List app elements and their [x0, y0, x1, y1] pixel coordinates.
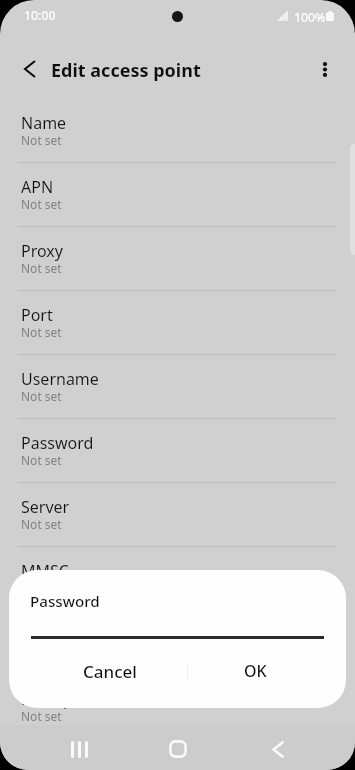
staticText: Not set	[21, 452, 62, 468]
staticText: Not set	[21, 516, 62, 532]
staticText: Username	[21, 368, 99, 390]
button[interactable]: Username	[0, 354, 355, 418]
staticText: Password	[21, 432, 94, 454]
staticText: MMSC	[21, 560, 69, 582]
button[interactable]: Proxy	[0, 226, 355, 290]
button[interactable]: OK	[183, 649, 328, 693]
staticText: Not set	[21, 132, 62, 148]
staticText: Not set	[21, 260, 62, 276]
staticText: APN	[21, 176, 54, 198]
button[interactable]: MMSC	[0, 546, 355, 610]
button[interactable]: Home	[156, 727, 200, 770]
button[interactable]: Cancel	[25, 649, 195, 693]
button[interactable]: Port	[0, 290, 355, 354]
button[interactable]: MMS proxy	[0, 610, 355, 674]
staticText: Not set	[21, 196, 62, 212]
staticText: MCC	[21, 752, 56, 770]
button[interactable]: Recent apps	[57, 727, 101, 770]
button[interactable]: APN	[0, 162, 355, 226]
button[interactable]: Name	[0, 98, 355, 162]
button[interactable]: MCC	[0, 738, 355, 770]
button[interactable]: Navigate up	[14, 53, 46, 85]
button[interactable]: MMS port	[0, 674, 355, 738]
staticText: Name	[21, 112, 67, 134]
staticText: Port	[21, 304, 53, 326]
button[interactable]: More options	[309, 53, 341, 85]
staticText: Password	[30, 591, 100, 612]
staticText: OK	[244, 660, 267, 682]
staticText: MMS port	[21, 688, 95, 710]
staticText: Edit access point	[51, 58, 201, 83]
staticText: Server	[21, 496, 70, 518]
staticText: Not set	[21, 708, 62, 724]
staticText: Proxy	[21, 240, 63, 262]
button[interactable]: Password	[0, 418, 355, 482]
button[interactable]: Back	[256, 727, 300, 770]
staticText: 100%	[294, 9, 326, 26]
staticText: MMS proxy	[21, 624, 106, 646]
staticText: Cancel	[83, 660, 137, 683]
staticText: Not set	[21, 388, 62, 404]
staticText: Not set	[21, 324, 62, 340]
button[interactable]: Server	[0, 482, 355, 546]
staticText: 10:00	[24, 7, 56, 24]
